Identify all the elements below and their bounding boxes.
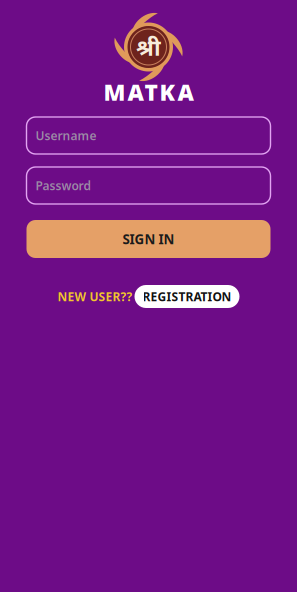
staticText: Username: [35, 127, 96, 144]
staticText: श्री: [136, 32, 161, 62]
staticText: NEW USER??: [57, 288, 132, 305]
staticText: REGISTRATION: [142, 288, 231, 305]
button[interactable]: SIGN IN: [26, 220, 270, 258]
button[interactable]: Username: [26, 117, 270, 154]
button[interactable]: REGISTRATION: [134, 285, 239, 308]
staticText: Password: [35, 177, 91, 194]
staticText: SIGN IN: [122, 230, 174, 248]
button[interactable]: Password: [26, 167, 270, 204]
staticText: MATKA: [103, 77, 193, 107]
